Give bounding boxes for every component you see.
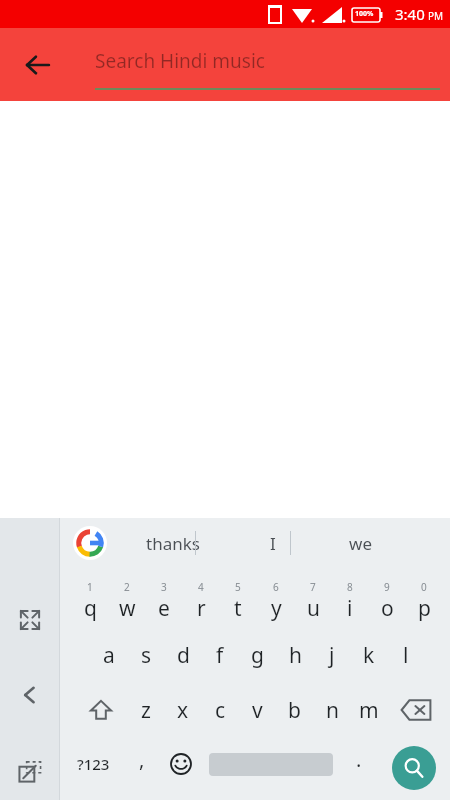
button[interactable]: . [344, 740, 374, 788]
staticText: , [139, 746, 145, 773]
staticText: k [363, 641, 375, 670]
staticText: c [215, 696, 226, 725]
staticText: I [270, 532, 276, 555]
button[interactable]: x [165, 686, 201, 734]
staticText: Search Hindi music [95, 48, 265, 74]
button[interactable]: ?123 [66, 740, 120, 788]
button[interactable]: m [351, 686, 387, 734]
button[interactable]: Floating keyboard [8, 750, 52, 794]
button[interactable]: h [277, 630, 313, 680]
button[interactable]: Expand keyboard [8, 598, 52, 642]
button[interactable]: d [165, 630, 201, 680]
staticText: 1 [87, 580, 93, 594]
button[interactable]: b [276, 686, 312, 734]
button[interactable]: we [315, 518, 405, 568]
button[interactable]: Previous [8, 673, 52, 717]
staticText: z [141, 696, 151, 725]
staticText: w [119, 594, 136, 623]
staticText: x [177, 696, 189, 725]
staticText: y [271, 594, 282, 623]
staticText: j [329, 641, 335, 670]
staticText: q [84, 594, 97, 623]
staticText: r [197, 594, 206, 623]
staticText: f [216, 641, 224, 670]
button[interactable]: 9 [369, 576, 405, 628]
button[interactable]: 8 [332, 576, 368, 628]
staticText: 4 [198, 580, 204, 594]
button[interactable]: 2 [109, 576, 145, 628]
button[interactable]: , [126, 740, 158, 788]
staticText: 8 [347, 580, 353, 594]
staticText: l [403, 641, 409, 670]
button[interactable]: I [235, 518, 310, 568]
staticText: g [251, 641, 264, 670]
staticText: p [418, 594, 431, 623]
staticText: 0 [421, 580, 427, 594]
button[interactable]: Back [14, 41, 62, 89]
staticText: PM [428, 9, 444, 23]
staticText: 3 [161, 580, 167, 594]
button[interactable]: n [314, 686, 350, 734]
staticText: e [158, 594, 170, 623]
staticText: we [349, 532, 372, 555]
button[interactable]: Search [392, 746, 436, 790]
staticText: d [177, 641, 190, 670]
staticText: i [347, 594, 353, 623]
button[interactable]: 4 [183, 576, 219, 628]
staticText: o [381, 594, 394, 623]
button[interactable]: k [351, 630, 387, 680]
button[interactable]: f [202, 630, 238, 680]
button[interactable]: Search Hindi music [95, 40, 440, 90]
staticText: 100% [355, 9, 374, 19]
staticText: h [289, 641, 302, 670]
staticText: . [356, 746, 362, 773]
button[interactable]: z [128, 686, 164, 734]
button[interactable]: j [314, 630, 350, 680]
button[interactable]: 0 [406, 576, 442, 628]
staticText: s [141, 641, 152, 670]
staticText: 9 [384, 580, 390, 594]
button[interactable]: Space [205, 740, 337, 788]
staticText: 3:40 [395, 4, 425, 24]
staticText: m [359, 696, 379, 725]
button[interactable]: thanks [118, 518, 228, 568]
staticText: n [326, 696, 339, 725]
button[interactable]: c [202, 686, 238, 734]
staticText: a [103, 641, 115, 670]
staticText: ?123 [77, 754, 110, 774]
button[interactable]: l [388, 630, 424, 680]
staticText: b [288, 696, 301, 725]
button[interactable]: v [239, 686, 275, 734]
button[interactable]: Google Search [72, 525, 108, 561]
button[interactable]: 6 [258, 576, 294, 628]
button[interactable]: s [128, 630, 164, 680]
button[interactable]: Shift [82, 686, 120, 734]
staticText: v [252, 696, 263, 725]
staticText: 6 [273, 580, 279, 594]
button[interactable]: Backspace [396, 686, 436, 734]
button[interactable]: 5 [220, 576, 256, 628]
button[interactable]: 1 [72, 576, 108, 628]
staticText: 7 [310, 580, 316, 594]
button[interactable]: 7 [295, 576, 331, 628]
button[interactable]: Emoji [163, 740, 199, 788]
staticText: t [234, 594, 242, 623]
button[interactable]: a [91, 630, 127, 680]
staticText: 5 [235, 580, 241, 594]
button[interactable]: g [239, 630, 275, 680]
staticText: 2 [124, 580, 130, 594]
staticText: thanks [146, 532, 200, 555]
staticText: u [307, 594, 320, 623]
button[interactable]: 3 [146, 576, 182, 628]
